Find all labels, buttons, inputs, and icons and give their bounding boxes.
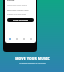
- button[interactable]: Home: [8, 37, 12, 41]
- staticText: Transfer playlists in seconds: [19, 62, 46, 65]
- staticText: Source: [7, 0, 15, 2]
- staticText: Choose your music service: [7, 4, 27, 6]
- staticText: Transfer all of your songs: [7, 13, 26, 15]
- staticText: MOVE YOUR MUSIC: [15, 56, 50, 61]
- staticText: START TRANSFER: [13, 19, 28, 21]
- button[interactable]: START TRANSFER: [7, 18, 34, 22]
- button[interactable]: Search: [15, 37, 19, 41]
- button[interactable]: Profile: [29, 37, 33, 41]
- button[interactable]: Library: [22, 37, 26, 41]
- staticText: Destination playlist name: [7, 9, 29, 11]
